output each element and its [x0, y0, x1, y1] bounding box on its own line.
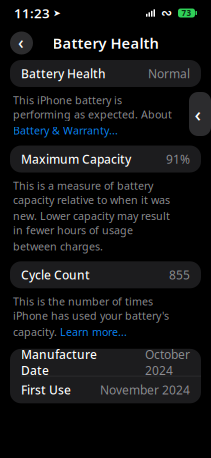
staticText: Maximum Capacity	[21, 151, 131, 167]
staticText: 11:23	[14, 4, 50, 22]
button[interactable]: Battery Health	[10, 60, 201, 87]
staticText: Battery & Warranty...	[13, 123, 118, 137]
staticText: Battery Health	[52, 33, 158, 53]
staticText: Manufacture Date	[21, 346, 97, 378]
staticText: First Use	[21, 382, 71, 398]
staticText: Battery Health	[21, 65, 106, 81]
staticText: 73	[181, 8, 191, 18]
staticText: This is a measure of battery capacity re…	[13, 178, 170, 207]
staticText: This iPhone battery is performing as exp…	[13, 93, 172, 121]
staticText: ➤	[50, 8, 61, 18]
staticText: November 2024	[100, 382, 190, 398]
staticText: October 2024	[145, 346, 190, 378]
staticText: 855	[169, 267, 190, 283]
button[interactable]: Maximum Capacity	[10, 145, 201, 172]
staticText: Learn more...	[60, 325, 127, 339]
staticText: This is the number of times iPhone has u…	[13, 294, 169, 323]
staticText: ‹	[194, 101, 201, 127]
staticText: new. Lower capacity may result in fewer …	[13, 209, 170, 237]
button[interactable]: Cycle Count	[10, 261, 201, 288]
button[interactable]: Back	[10, 31, 33, 55]
staticText: ‹	[18, 31, 24, 54]
staticText: 91%	[166, 151, 190, 167]
button[interactable]: First Use	[10, 376, 201, 403]
staticText: ∾	[161, 5, 172, 20]
staticText: Cycle Count	[21, 267, 90, 283]
staticText: capacity.	[13, 325, 60, 339]
staticText: between charges.	[13, 239, 103, 253]
button[interactable]: Manufacture Date	[10, 349, 201, 376]
button[interactable]: Back	[189, 92, 211, 136]
staticText: Normal	[148, 65, 190, 81]
